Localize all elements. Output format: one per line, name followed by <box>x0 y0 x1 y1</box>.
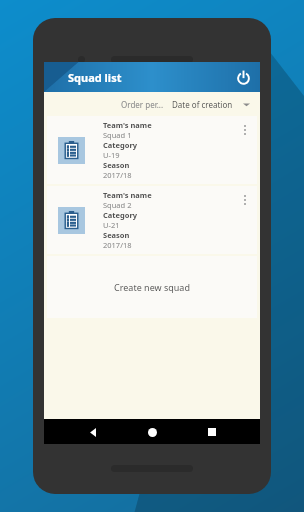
staticText: Date of creation <box>172 99 233 110</box>
button[interactable]: Home <box>141 421 163 443</box>
button[interactable]: Date of creation <box>172 99 250 110</box>
button[interactable]: More options <box>237 122 253 138</box>
button[interactable]: Power / exit <box>232 66 254 88</box>
staticText: Squad list <box>68 70 122 85</box>
staticText: Season <box>103 230 130 240</box>
button[interactable]: Recents <box>201 421 223 443</box>
staticText: Category <box>103 140 138 150</box>
staticText: U-21 <box>103 220 120 230</box>
staticText: Season <box>103 160 130 170</box>
staticText: Order per... <box>121 99 164 110</box>
button[interactable]: Team's name <box>47 186 257 254</box>
staticText: 2017/18 <box>103 240 132 250</box>
staticText: U-19 <box>103 150 120 160</box>
button[interactable]: Back <box>82 421 104 443</box>
button[interactable]: Team's name <box>47 116 257 184</box>
staticText: Squad 1 <box>103 130 132 140</box>
staticText: Team's name <box>103 190 152 200</box>
staticText: Team's name <box>103 120 152 130</box>
staticText: Create new squad <box>114 281 190 293</box>
staticText: Category <box>103 210 138 220</box>
button[interactable]: More options <box>237 192 253 208</box>
staticText: Squad 2 <box>103 200 132 210</box>
button[interactable]: Create new squad <box>47 256 257 318</box>
staticText: 2017/18 <box>103 170 132 180</box>
